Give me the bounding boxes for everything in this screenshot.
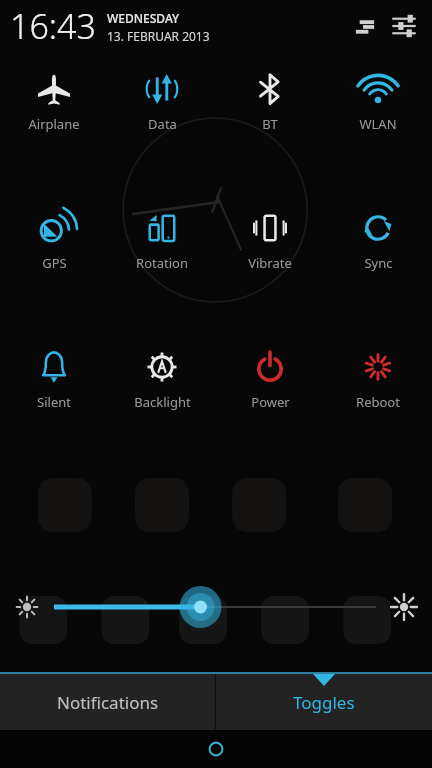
staticText: Power (251, 393, 290, 411)
staticText: 13. FEBRUAR 2013 (107, 28, 210, 44)
button[interactable]: Dim (0, 580, 432, 634)
button[interactable]: Clear notifications (350, 11, 380, 41)
button[interactable]: GPS (0, 207, 108, 276)
staticText: Silent (37, 393, 71, 411)
button[interactable]: WLAN (324, 68, 432, 137)
staticText: Data (148, 115, 177, 133)
staticText: WEDNESDAY (107, 10, 180, 26)
button[interactable]: BT (216, 68, 324, 137)
staticText: Airplane (28, 115, 80, 133)
staticText: GPS (42, 254, 67, 272)
button[interactable]: Settings (388, 10, 420, 42)
button[interactable]: Silent (0, 346, 108, 415)
button[interactable]: Sync (324, 207, 432, 276)
staticText: Toggles (293, 691, 355, 714)
button[interactable]: Airplane (0, 68, 108, 137)
staticText: Rotation (136, 254, 188, 272)
staticText: BT (262, 115, 278, 133)
button[interactable]: Reboot (324, 346, 432, 415)
staticText: WLAN (359, 115, 397, 133)
button[interactable]: Rotation (108, 207, 216, 276)
staticText: 16:43 (10, 3, 96, 49)
button[interactable]: Vibrate (216, 207, 324, 276)
staticText: Backlight (134, 393, 191, 411)
other: Dim (14, 594, 40, 620)
staticText: Sync (364, 254, 393, 272)
other: Bright (390, 593, 418, 621)
button[interactable]: Home (201, 734, 231, 764)
button[interactable]: Power (216, 346, 324, 415)
button[interactable]: Notifications (0, 674, 215, 730)
button[interactable]: Backlight (108, 346, 216, 415)
button[interactable]: Toggles (216, 674, 432, 730)
staticText: Notifications (57, 691, 159, 714)
staticText: Vibrate (248, 254, 292, 272)
button[interactable]: Data (108, 68, 216, 137)
staticText: Reboot (356, 393, 400, 411)
